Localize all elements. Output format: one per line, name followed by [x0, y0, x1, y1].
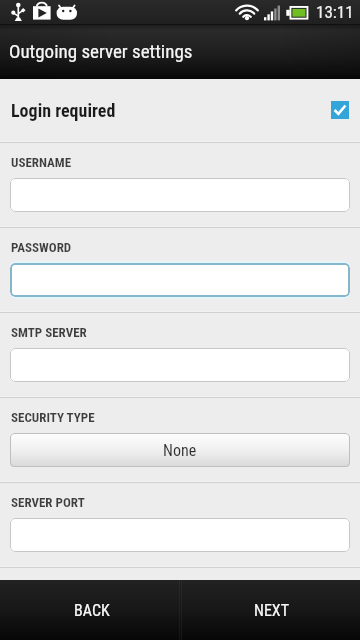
button[interactable] — [10, 518, 350, 552]
staticText: SERVER PORT — [11, 495, 85, 510]
staticText: 13:11 — [316, 2, 354, 22]
staticText: BACK — [74, 601, 110, 620]
staticText: SMTP SERVER — [11, 325, 87, 340]
button[interactable]: None — [10, 433, 350, 467]
staticText: Outgoing server settings — [9, 40, 193, 62]
button[interactable]: NEXT — [180, 580, 360, 640]
button[interactable]: Login required — [0, 79, 360, 141]
staticText: SECURITY TYPE — [11, 410, 95, 425]
button[interactable] — [10, 261, 350, 299]
staticText: PASSWORD — [11, 240, 72, 255]
button[interactable] — [10, 348, 350, 382]
staticText: USERNAME — [11, 155, 72, 170]
staticText: None — [163, 441, 197, 460]
button[interactable] — [10, 178, 350, 212]
button[interactable]: BACK — [0, 580, 180, 640]
staticText: Login required — [11, 100, 116, 121]
staticText: NEXT — [254, 601, 290, 620]
